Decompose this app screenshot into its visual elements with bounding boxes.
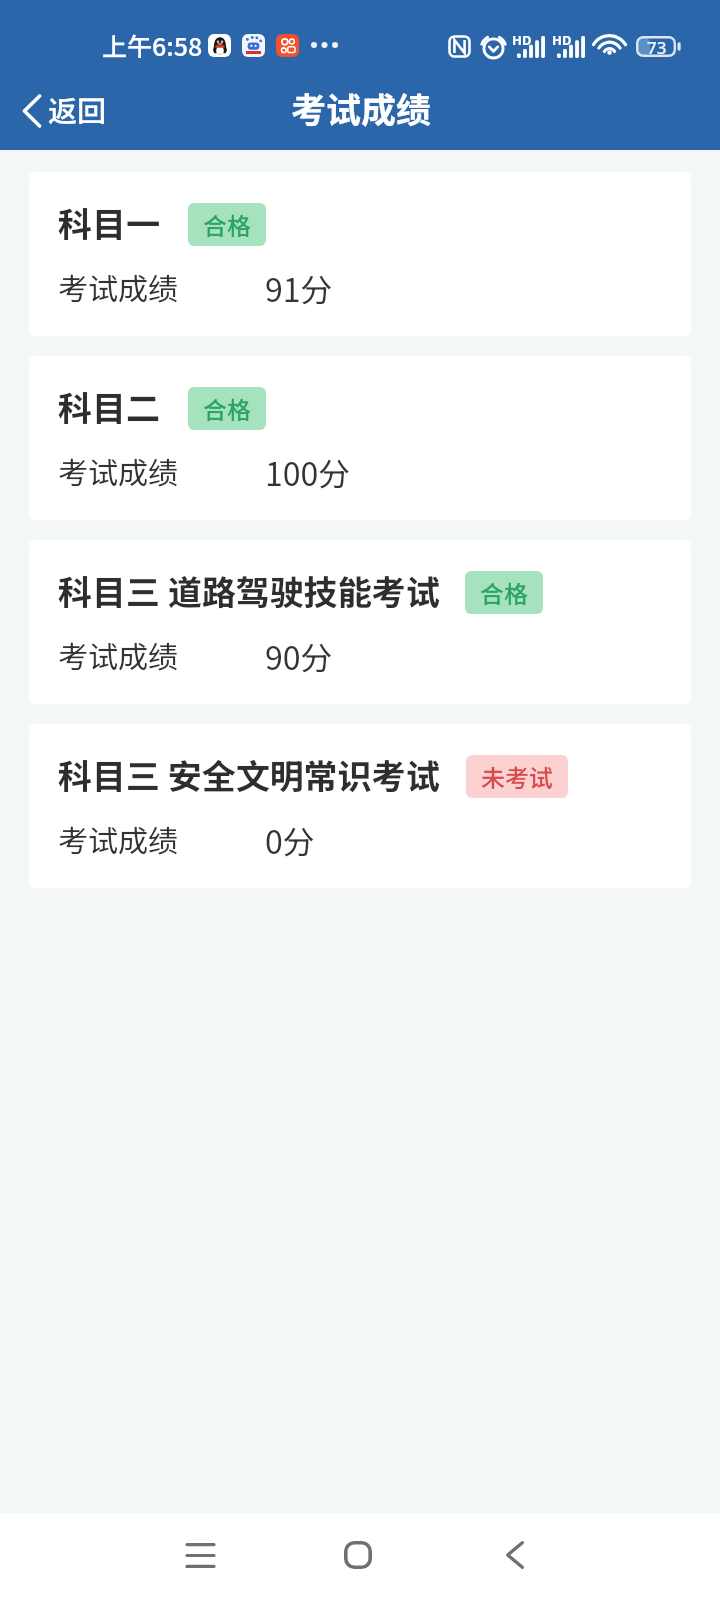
staticText: HD [552, 31, 572, 49]
button[interactable]: 科目二 [29, 356, 691, 520]
button[interactable]: 科目三 安全文明常识考试 [29, 724, 691, 888]
staticText: 考试成绩 [291, 82, 432, 133]
button[interactable]: 科目三 道路驾驶技能考试 [29, 540, 691, 704]
staticText: 0分 [265, 817, 315, 863]
button[interactable]: 科目一 [29, 172, 691, 336]
staticText: 合格 [203, 391, 251, 426]
staticText: 考试成绩 [58, 449, 178, 492]
staticText: 科目三 安全文明常识考试 [58, 750, 440, 799]
staticText: 100分 [265, 449, 351, 495]
staticText: 考试成绩 [58, 633, 178, 676]
staticText: 考试成绩 [58, 817, 178, 860]
staticText: 91分 [265, 265, 333, 311]
button[interactable]: 返回 [0, 78, 125, 140]
button[interactable]: Home [324, 1521, 392, 1589]
staticText: 90分 [265, 633, 333, 679]
staticText: 合格 [480, 575, 528, 610]
staticText: 科目一 [58, 198, 160, 247]
button[interactable]: Recent apps [166, 1521, 234, 1589]
staticText: 返回 [48, 88, 107, 130]
staticText: 科目三 道路驾驶技能考试 [58, 566, 440, 615]
staticText: 合格 [203, 207, 251, 242]
staticText: HD [512, 31, 532, 49]
staticText: 科目二 [58, 382, 160, 431]
staticText: 未考试 [481, 759, 553, 794]
staticText: 考试成绩 [58, 265, 178, 308]
staticText: 上午6:58 [102, 27, 203, 63]
button[interactable]: Back [481, 1521, 549, 1589]
staticText: 73 [647, 36, 667, 57]
